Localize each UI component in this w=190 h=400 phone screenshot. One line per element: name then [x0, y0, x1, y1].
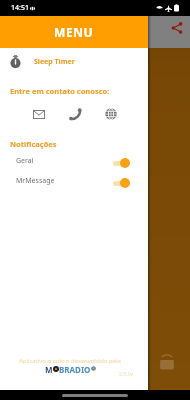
button[interactable]: Site: [93, 104, 129, 124]
staticText: Notificações: [10, 139, 57, 149]
button[interactable]: E-mail: [21, 104, 57, 124]
button[interactable]: MrMessage: [0, 174, 148, 190]
staticText: Aplicativo criado e desenvolvido pela: [19, 357, 121, 365]
button[interactable]: Telefone: [57, 104, 93, 124]
staticText: Entre em contato conosco:: [10, 86, 110, 96]
button[interactable]: Sleep Timer: [0, 52, 148, 74]
button[interactable]: Compartilhar: [164, 15, 190, 41]
staticText: BRADIO: [59, 364, 91, 373]
staticText: Sleep Timer: [34, 57, 75, 67]
staticText: MENU: [54, 24, 94, 40]
staticText: 14:51: [11, 3, 29, 13]
button[interactable]: Geral: [0, 154, 148, 170]
staticText: 2.5.1v: [119, 371, 133, 378]
staticText: MrMessage: [16, 176, 55, 186]
staticText: Geral: [16, 156, 34, 166]
staticText: M: [45, 364, 53, 373]
